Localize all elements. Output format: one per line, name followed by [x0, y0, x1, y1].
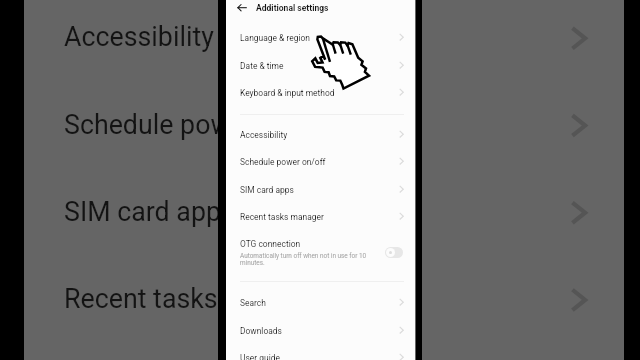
- staticText: Recent tasks manager: [64, 283, 331, 314]
- staticText: SIM card apps: [240, 185, 294, 195]
- staticText: User guide: [240, 353, 280, 360]
- button[interactable]: [226, 318, 415, 346]
- staticText: Automatically turn off when not in use f…: [240, 252, 367, 260]
- staticText: Search: [240, 298, 266, 308]
- button[interactable]: [226, 177, 415, 205]
- staticText: SIM card apps: [64, 196, 235, 227]
- staticText: Date & time: [240, 61, 284, 71]
- button[interactable]: OTG connection switch: [385, 247, 403, 258]
- staticText: Additional settings: [256, 3, 329, 13]
- button[interactable]: [226, 80, 415, 108]
- staticText: Schedule power on/off: [240, 157, 326, 167]
- button[interactable]: [226, 290, 415, 318]
- button[interactable]: [226, 53, 415, 81]
- staticText: minutes.: [240, 259, 265, 267]
- button[interactable]: [226, 204, 415, 232]
- staticText: Recent tasks manager: [240, 212, 324, 222]
- staticText: Downloads: [240, 326, 282, 336]
- button[interactable]: Back: [233, 2, 249, 18]
- button[interactable]: [226, 25, 415, 53]
- button[interactable]: [226, 231, 415, 265]
- staticText: Language & region: [240, 33, 310, 43]
- staticText: Keyboard & input method: [240, 88, 335, 98]
- button[interactable]: [226, 149, 415, 177]
- button[interactable]: [226, 122, 415, 150]
- staticText: Accessibility: [64, 21, 214, 52]
- staticText: Accessibility: [240, 130, 288, 140]
- staticText: Schedule power on/off: [64, 109, 336, 140]
- button[interactable]: [226, 345, 415, 360]
- staticText: OTG connection: [240, 239, 301, 249]
